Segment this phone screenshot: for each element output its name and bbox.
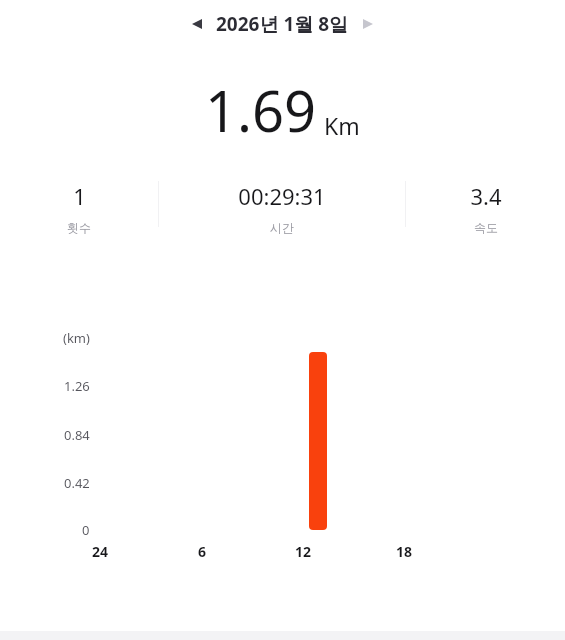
staticText: (km) — [63, 329, 90, 347]
staticText: 속도 — [474, 220, 498, 235]
button[interactable]: Next day — [356, 12, 380, 36]
staticText: 0.84 — [64, 426, 90, 444]
staticText: 3.4 — [470, 181, 502, 211]
staticText: 1 — [73, 181, 86, 211]
staticText: 횟수 — [67, 220, 91, 235]
staticText: 6 — [198, 542, 207, 561]
staticText: 00:29:31 — [238, 181, 326, 211]
staticText: 0 — [82, 521, 90, 539]
staticText: Km — [324, 110, 360, 141]
button[interactable]: 1 — [0, 181, 158, 235]
staticText: 18 — [396, 542, 413, 561]
button[interactable]: 00:29:31 — [159, 181, 405, 235]
staticText: 1.69 — [205, 72, 317, 148]
button[interactable]: 1.26 kilometers at 12 o'clock — [309, 352, 327, 530]
button[interactable]: Previous day — [185, 12, 209, 36]
staticText: 0.42 — [64, 474, 90, 492]
button[interactable]: 3.4 — [406, 181, 565, 235]
staticText: 2026년 1월 8일 — [216, 11, 349, 37]
staticText: 24 — [92, 542, 109, 561]
staticText: 시간 — [270, 220, 294, 235]
staticText: 12 — [295, 542, 312, 561]
staticText: 1.26 — [64, 377, 90, 395]
